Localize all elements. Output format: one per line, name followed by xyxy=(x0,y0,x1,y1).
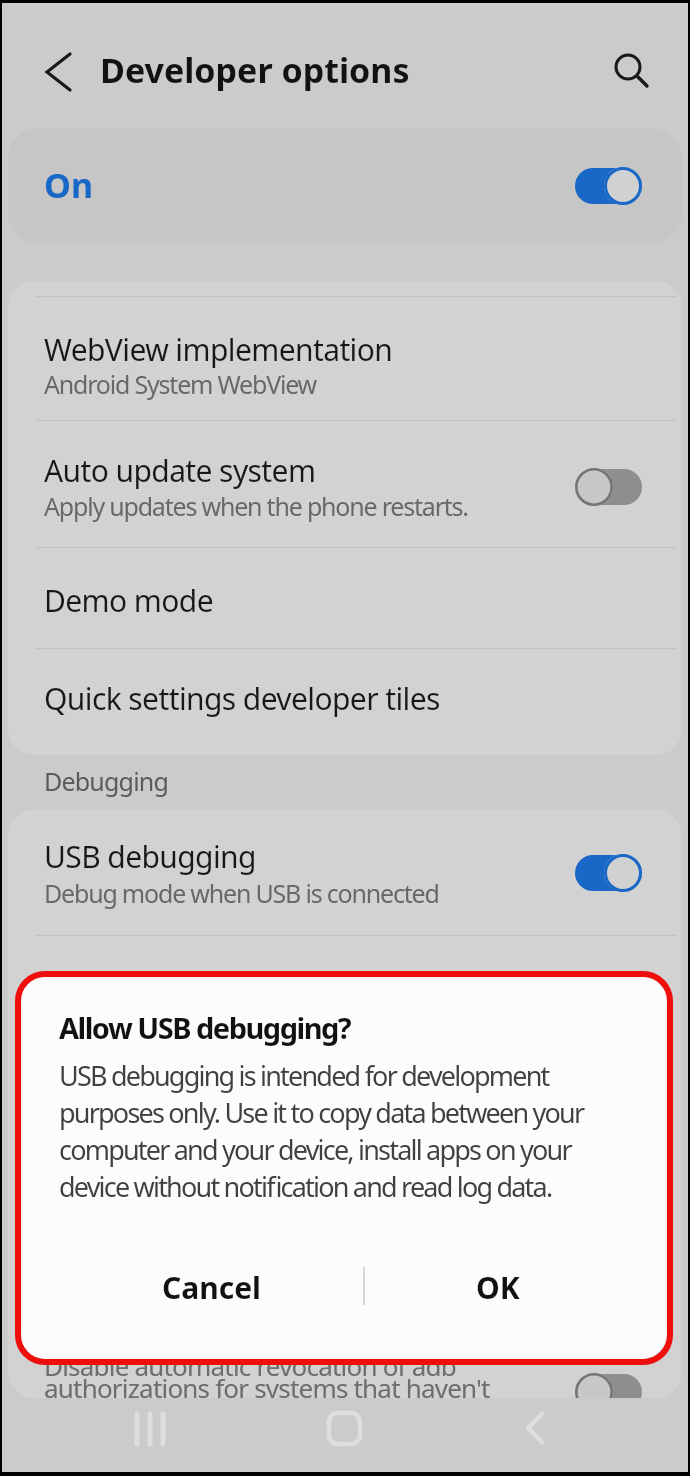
staticText: Cancel xyxy=(162,1267,262,1308)
button[interactable] xyxy=(606,46,654,94)
button[interactable] xyxy=(575,166,642,206)
staticText: Apply updates when the phone restarts. xyxy=(44,489,468,523)
staticText: Disable automatic revocation of adb xyxy=(44,1348,456,1383)
staticText: Android System WebView xyxy=(44,367,317,401)
button[interactable] xyxy=(8,296,682,420)
staticText: OK xyxy=(476,1267,520,1308)
button[interactable] xyxy=(42,52,78,92)
staticText: USB debugging is intended for developmen… xyxy=(59,1057,584,1205)
button[interactable]: OK xyxy=(408,1262,588,1312)
staticText: Developer options xyxy=(100,47,410,93)
staticText: authorizations for systems that haven't xyxy=(44,1370,490,1405)
button[interactable] xyxy=(518,1410,558,1450)
button[interactable] xyxy=(575,467,642,507)
button[interactable]: Cancel xyxy=(122,1262,302,1312)
staticText: Auto update system xyxy=(44,450,316,491)
button[interactable] xyxy=(326,1410,366,1450)
button[interactable] xyxy=(128,1410,172,1450)
button[interactable] xyxy=(8,648,682,755)
button[interactable] xyxy=(8,420,682,546)
staticText: Quick settings developer tiles xyxy=(44,678,440,719)
staticText: On xyxy=(44,162,93,208)
button[interactable] xyxy=(8,547,682,648)
staticText: Debugging xyxy=(44,764,169,798)
button[interactable] xyxy=(8,128,682,243)
staticText: Demo mode xyxy=(44,580,213,621)
staticText: Allow USB debugging? xyxy=(59,1008,351,1047)
button[interactable] xyxy=(575,1372,642,1412)
staticText: WebView implementation xyxy=(44,329,393,370)
button[interactable] xyxy=(575,853,642,893)
button[interactable] xyxy=(8,810,682,935)
staticText: USB debugging xyxy=(44,836,256,877)
staticText: Debug mode when USB is connected xyxy=(44,876,439,910)
